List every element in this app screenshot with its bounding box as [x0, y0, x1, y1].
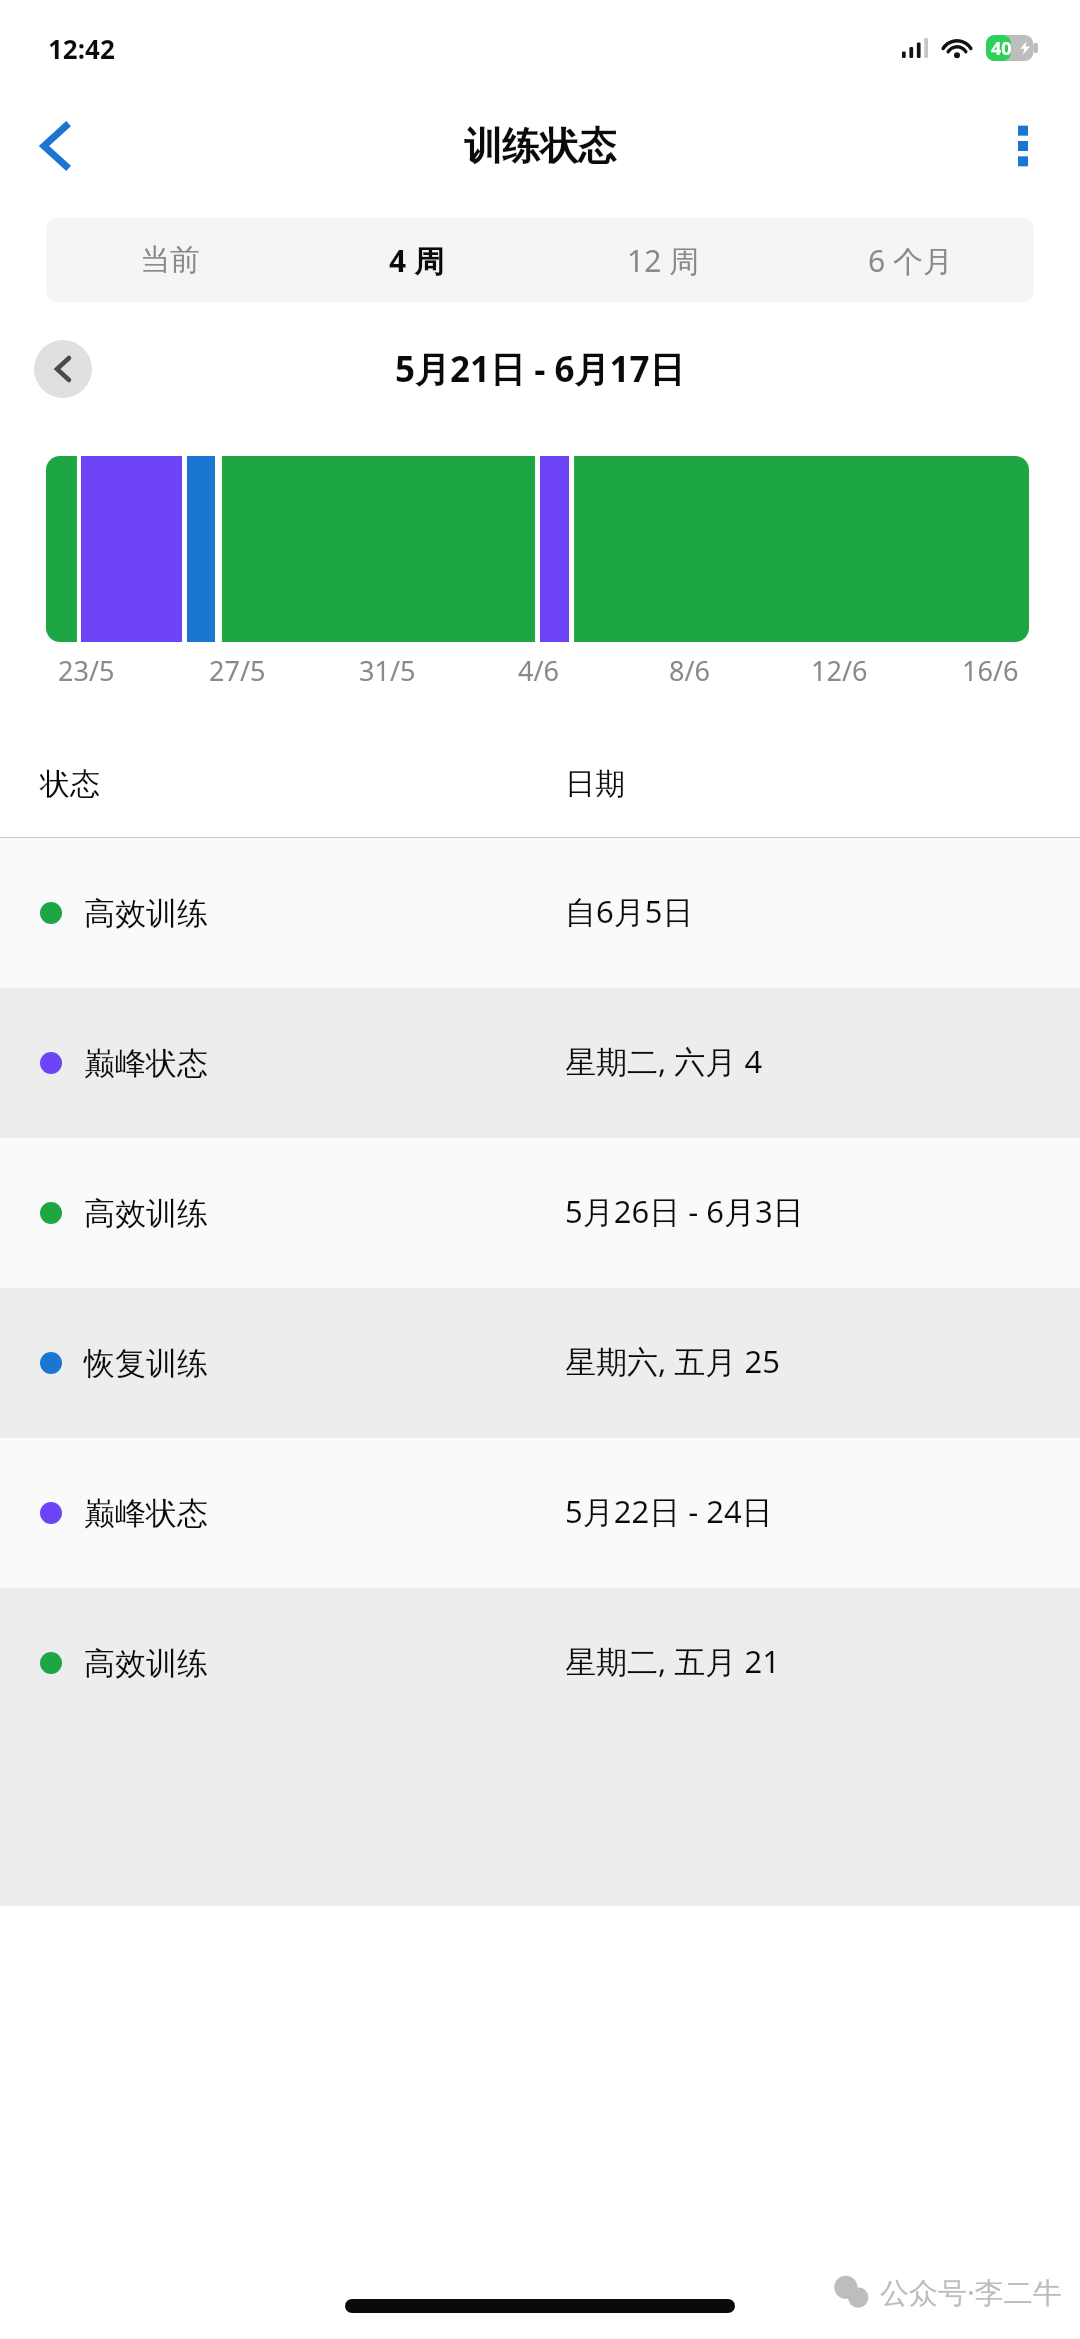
staticText: 5月22日 - 24日 [565, 1490, 773, 1532]
button[interactable]: 巅峰状态 [0, 988, 1080, 1138]
staticText: 巅峰状态 [84, 1494, 208, 1533]
button[interactable]: 高效训练 [0, 1588, 1080, 1906]
staticText: 12/6 [811, 652, 868, 689]
staticText: 12 周 [627, 240, 700, 281]
button[interactable]: 12 周 [540, 218, 787, 302]
staticText: 4/6 [518, 652, 559, 689]
button[interactable]: Previous period [34, 340, 92, 398]
staticText: 巅峰状态 [84, 1044, 208, 1083]
staticText: 12:42 [48, 31, 115, 66]
staticText: 日期 [565, 765, 625, 803]
staticText: 5月26日 - 6月3日 [565, 1190, 804, 1232]
staticText: 27/5 [209, 652, 266, 689]
staticText: 4 周 [389, 240, 444, 281]
staticText: 星期二, 五月 21 [565, 1640, 780, 1682]
staticText: 8/6 [669, 652, 710, 689]
staticText: 状态 [40, 765, 100, 803]
button[interactable]: 恢复训练 [0, 1288, 1080, 1438]
staticText: 23/5 [58, 652, 115, 689]
staticText: 公众号·李二牛 [880, 2272, 1062, 2312]
button[interactable]: 6 个月 [787, 218, 1034, 302]
button[interactable]: 高效训练 [0, 1138, 1080, 1288]
button[interactable]: 巅峰状态 [0, 1438, 1080, 1588]
staticText: 5月21日 - 6月17日 [395, 345, 685, 393]
staticText: 恢复训练 [84, 1344, 208, 1383]
staticText: 自6月5日 [565, 890, 694, 932]
staticText: 当前 [140, 241, 200, 279]
staticText: 星期二, 六月 4 [565, 1040, 763, 1082]
staticText: 星期六, 五月 25 [565, 1340, 780, 1382]
staticText: 高效训练 [84, 1194, 208, 1233]
button[interactable]: 当前 [46, 218, 293, 302]
staticText: 高效训练 [84, 1644, 208, 1683]
staticText: 6 个月 [868, 240, 953, 281]
button[interactable]: 4 周 [293, 218, 540, 302]
staticText: 31/5 [359, 652, 416, 689]
staticText: 训练状态 [464, 122, 616, 170]
staticText: 16/6 [962, 652, 1019, 689]
button[interactable]: 高效训练 [0, 838, 1080, 988]
staticText: 40 [991, 36, 1012, 61]
staticText: 高效训练 [84, 894, 208, 933]
button[interactable]: More options [988, 111, 1058, 181]
button[interactable]: Back [20, 111, 90, 181]
